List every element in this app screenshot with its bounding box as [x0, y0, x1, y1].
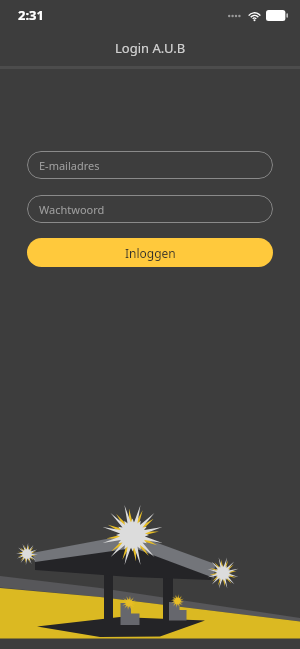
button[interactable]: Wachtwoord: [27, 195, 273, 223]
button[interactable]: Inloggen: [27, 238, 273, 267]
button[interactable]: E-mailadres: [27, 151, 273, 179]
staticText: Inloggen: [125, 245, 176, 261]
staticText: Wachtwoord: [39, 202, 105, 217]
staticText: E-mailadres: [39, 158, 100, 173]
staticText: Login A.U.B: [115, 39, 186, 57]
staticText: 2:31: [18, 6, 44, 24]
